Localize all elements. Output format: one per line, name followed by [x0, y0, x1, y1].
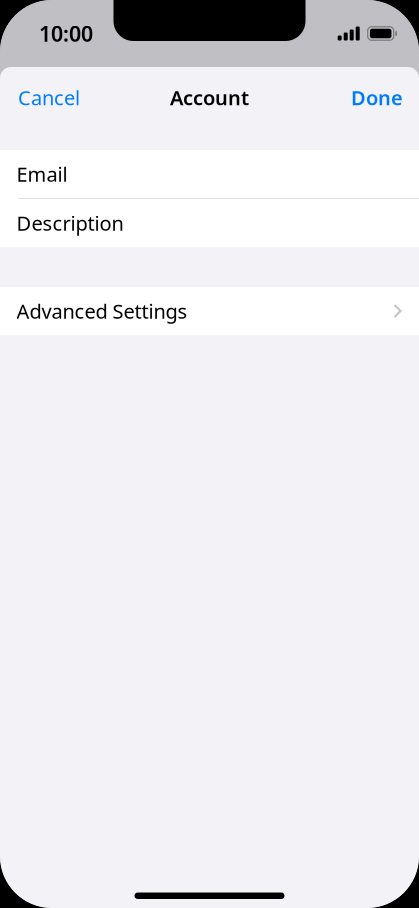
staticText: Cancel: [18, 84, 80, 111]
staticText: Done: [351, 84, 403, 111]
button[interactable]: Email: [0, 150, 419, 198]
button[interactable]: Advanced Settings: [0, 287, 419, 335]
staticText: Email: [16, 161, 67, 187]
staticText: Account: [170, 84, 249, 111]
button[interactable]: Description: [0, 199, 419, 247]
staticText: 10:00: [39, 19, 93, 48]
button[interactable]: Done: [335, 74, 419, 121]
staticText: Advanced Settings: [16, 298, 187, 324]
button[interactable]: Cancel: [0, 74, 98, 121]
staticText: Description: [16, 210, 123, 236]
